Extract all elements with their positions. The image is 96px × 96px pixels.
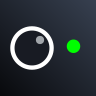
button[interactable]: Recording indicator — [67, 39, 80, 53]
button[interactable]: Shutter — [10, 26, 54, 70]
